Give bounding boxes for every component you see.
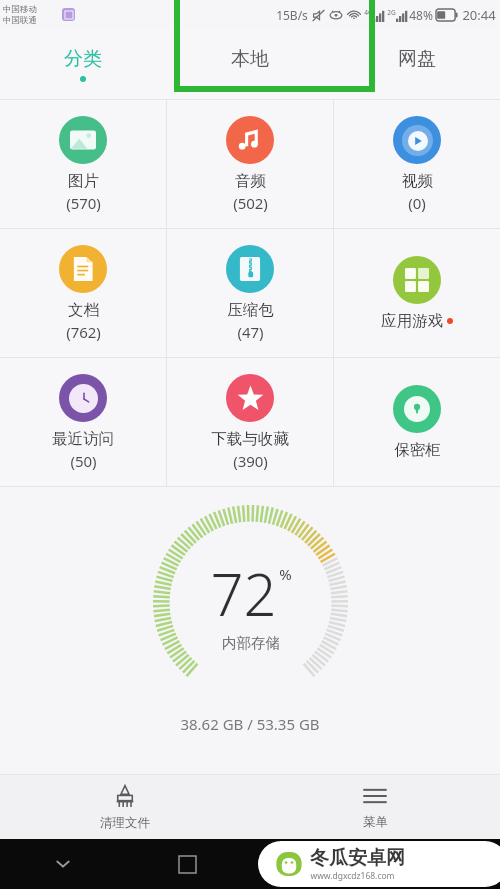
staticText: 图片 xyxy=(68,171,99,191)
staticText: 冬瓜安卓网 xyxy=(310,846,405,870)
staticText: 应用游戏 xyxy=(381,311,443,331)
button[interactable]: 本地 xyxy=(166,29,333,99)
button[interactable]: 网盘 xyxy=(333,29,500,99)
staticText: (762) xyxy=(66,322,101,342)
button[interactable]: 图片 xyxy=(0,100,166,228)
button[interactable]: Recent apps xyxy=(125,839,250,889)
button[interactable]: Back xyxy=(375,839,500,889)
staticText: (570) xyxy=(66,193,101,213)
button[interactable]: 菜单 xyxy=(250,775,500,839)
staticText: 清理文件 xyxy=(100,815,150,831)
staticText: (50) xyxy=(70,451,97,471)
staticText: 下载与收藏 xyxy=(211,429,289,449)
button[interactable]: 分类 xyxy=(0,29,166,99)
staticText: 内部存储 xyxy=(222,634,280,652)
button[interactable]: 保密柜 xyxy=(334,358,500,486)
staticText: (0) xyxy=(408,193,426,213)
staticText: 最近访问 xyxy=(52,429,114,449)
button[interactable]: Hide xyxy=(0,839,125,889)
button[interactable]: 最近访问 xyxy=(0,358,166,486)
button[interactable]: 文档 xyxy=(0,229,166,357)
staticText: (390) xyxy=(233,451,268,471)
staticText: (502) xyxy=(233,193,268,213)
staticText: % xyxy=(279,564,292,584)
staticText: 72 xyxy=(210,554,277,633)
staticText: 38.62 GB / 53.35 GB xyxy=(180,714,320,734)
staticText: 中国联通 xyxy=(3,15,37,26)
staticText: 菜单 xyxy=(363,814,388,830)
staticText: 压缩包 xyxy=(227,300,274,320)
staticText: (47) xyxy=(237,322,264,342)
staticText: 保密柜 xyxy=(394,440,441,460)
staticText: 2G xyxy=(387,8,396,17)
staticText: 音频 xyxy=(235,171,266,191)
staticText: 网盘 xyxy=(398,47,436,71)
button[interactable]: 下载与收藏 xyxy=(167,358,333,486)
staticText: 文档 xyxy=(68,300,99,320)
staticText: 视频 xyxy=(402,171,433,191)
staticText: 中国移动 xyxy=(3,4,37,15)
staticText: 分类 xyxy=(64,47,102,71)
staticText: 15B/s xyxy=(276,7,308,23)
button[interactable]: 音频 xyxy=(167,100,333,228)
staticText: 48% xyxy=(409,7,433,23)
staticText: 20:44 xyxy=(462,6,496,24)
button[interactable]: 清理文件 xyxy=(0,775,250,839)
button[interactable]: 压缩包 xyxy=(167,229,333,357)
staticText: 4G xyxy=(364,8,373,17)
button[interactable]: 应用游戏 xyxy=(334,229,500,357)
staticText: www.dgxcdz168.com xyxy=(310,870,395,882)
button[interactable]: Home xyxy=(250,839,375,889)
staticText: 本地 xyxy=(231,47,269,71)
button[interactable]: 视频 xyxy=(334,100,500,228)
